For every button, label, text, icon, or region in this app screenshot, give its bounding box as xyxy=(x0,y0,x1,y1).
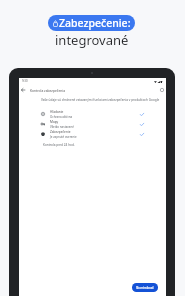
button[interactable]: Hľadanie xyxy=(41,109,144,119)
staticText: Kontrola pred 24 hod. xyxy=(43,143,75,147)
staticText: Zabezpečenie xyxy=(50,130,71,134)
staticText: integrované xyxy=(55,31,129,49)
staticText: Skontrolovať xyxy=(136,286,154,290)
staticText: Mapy xyxy=(50,120,59,124)
button[interactable]: Help xyxy=(158,86,166,94)
staticText: Ochrana aktívna xyxy=(50,115,73,119)
staticText: Hľadanie xyxy=(50,110,64,114)
staticText: Zabezpečenie: xyxy=(59,16,131,30)
button[interactable]: Mapy xyxy=(41,119,144,129)
staticText: Je zapnuté overenie xyxy=(50,135,77,139)
button[interactable]: Skontrolovať xyxy=(132,283,158,292)
button[interactable]: Back xyxy=(19,86,27,94)
staticText: Vaše údaje sú chránené vstavanými funkci… xyxy=(41,98,160,102)
staticText: Kontrola zabezpečenia xyxy=(30,88,65,92)
staticText: Všetko nastavené xyxy=(50,125,74,129)
button[interactable]: Zabezpečenie xyxy=(41,129,144,139)
staticText: 9:30 xyxy=(22,79,28,83)
button[interactable]: Zabezpečenie: xyxy=(48,15,135,31)
